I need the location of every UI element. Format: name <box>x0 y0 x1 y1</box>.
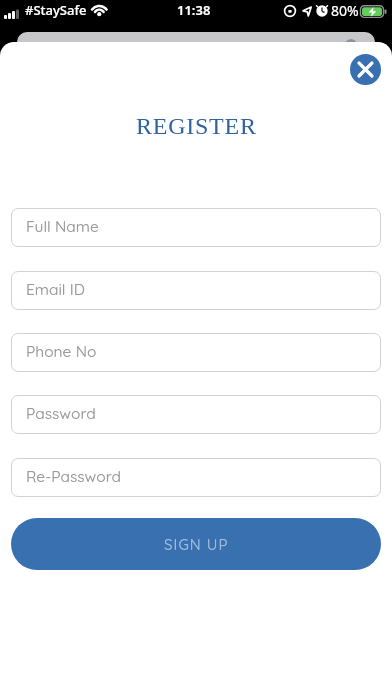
button[interactable] <box>350 54 381 85</box>
button[interactable]: Full Name <box>11 208 381 247</box>
staticText: SIGN UP <box>164 535 229 554</box>
button[interactable]: Phone No <box>11 333 381 372</box>
staticText: Re-Password <box>26 466 121 485</box>
staticText: Phone No <box>26 341 97 360</box>
staticText: #StaySafe <box>25 1 87 19</box>
staticText: 11:38 <box>177 1 211 19</box>
button[interactable]: Password <box>11 395 381 434</box>
staticText: 80% <box>331 1 359 20</box>
staticText: Full Name <box>26 216 99 235</box>
staticText: Password <box>26 403 96 422</box>
button[interactable]: Re-Password <box>11 458 381 497</box>
button[interactable]: Email ID <box>11 271 381 310</box>
staticText: REGISTER <box>136 113 257 140</box>
staticText: Email ID <box>26 279 85 298</box>
button[interactable]: SIGN UP <box>11 518 381 570</box>
